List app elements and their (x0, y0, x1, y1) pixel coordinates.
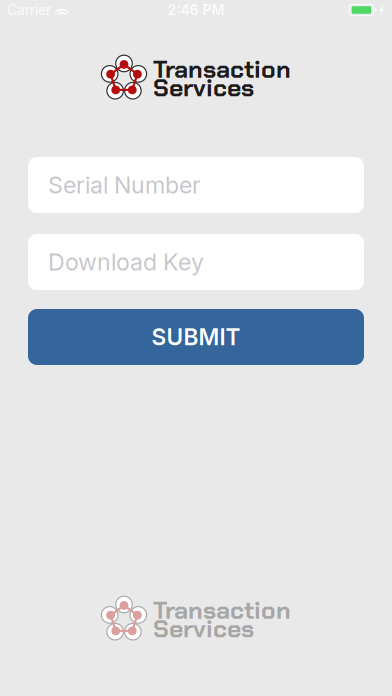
staticText: Carrier (7, 1, 51, 18)
staticText: Serial Number (48, 171, 201, 199)
staticText: 2:46 PM (167, 1, 224, 18)
staticText: Services (153, 613, 254, 645)
button[interactable]: SUBMIT (28, 309, 364, 365)
staticText: Transaction (153, 594, 291, 626)
staticText: Transaction (153, 53, 291, 85)
staticText: Services (153, 72, 254, 104)
staticText: SUBMIT (151, 323, 240, 351)
button[interactable]: Serial Number (28, 157, 364, 213)
staticText: Download Key (48, 248, 204, 276)
button[interactable]: Download Key (28, 234, 364, 290)
